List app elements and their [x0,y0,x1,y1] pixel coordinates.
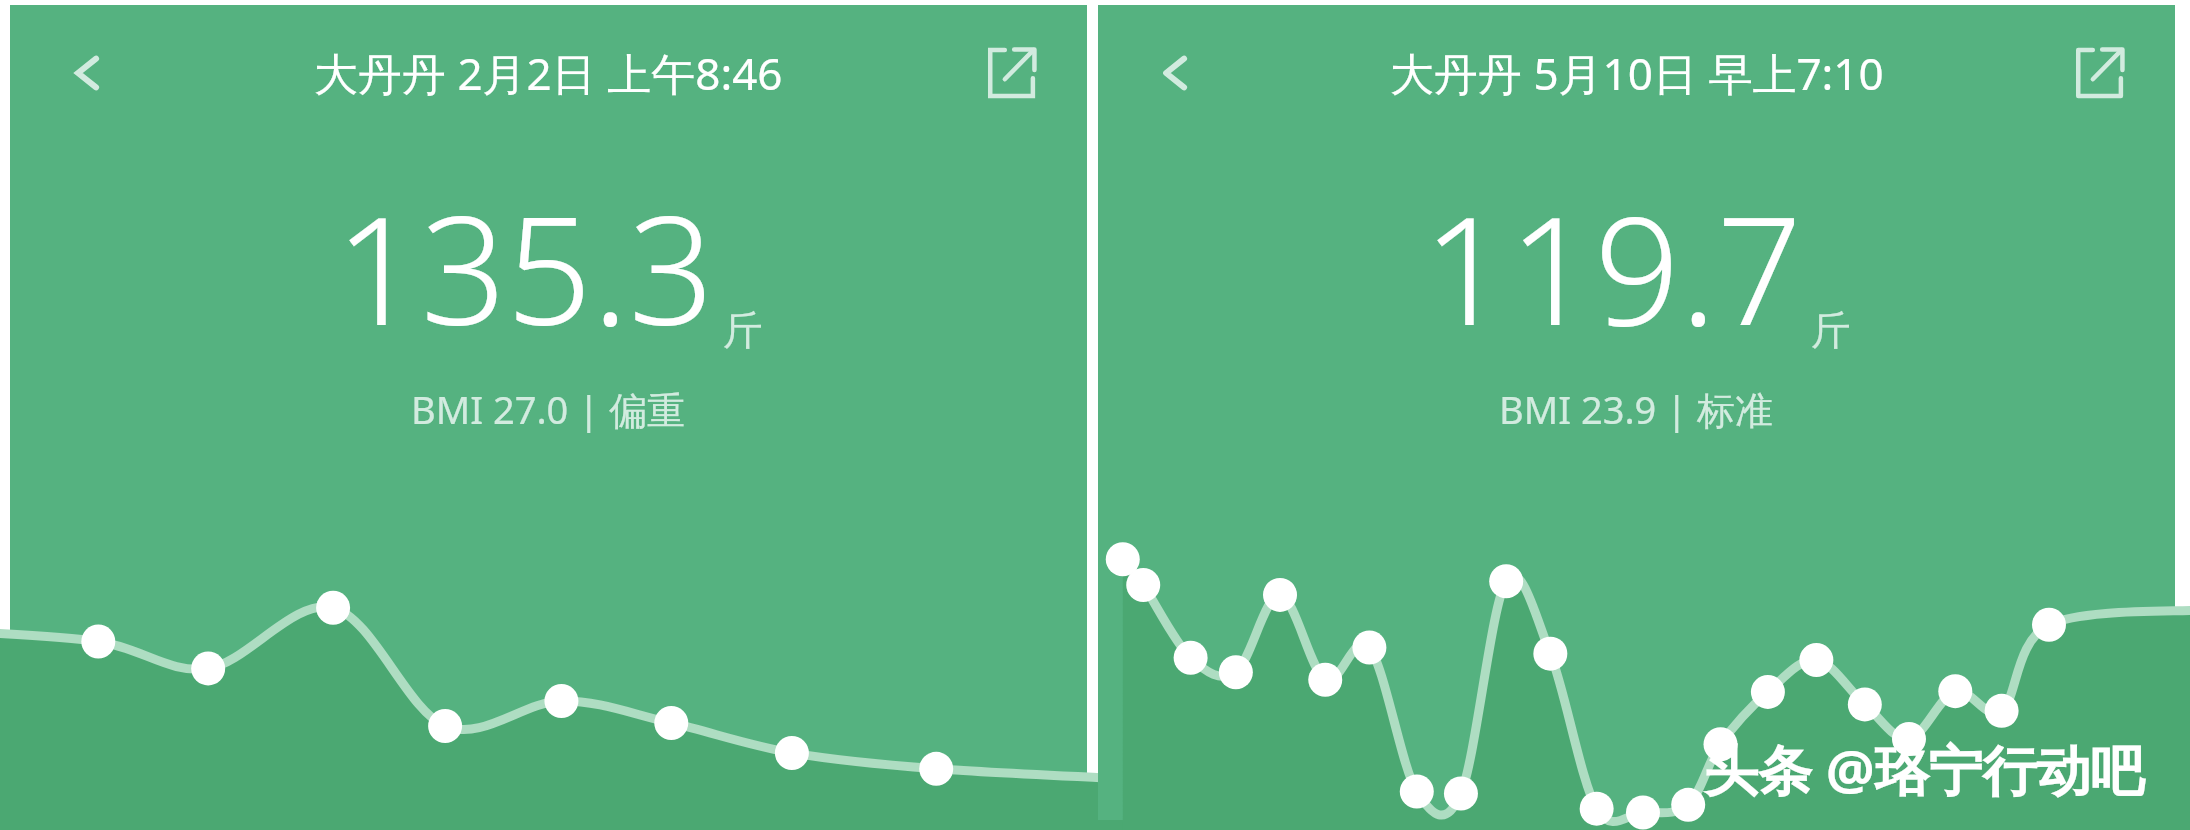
button[interactable]: Share [977,40,1043,106]
staticText: 斤 [723,305,763,355]
staticText: 大丹丹 5月10日 早上7:10 [1390,43,1884,103]
staticText: 头条 @珞宁行动吧 [1704,732,2145,806]
staticText: 119.7 [1423,165,1803,369]
button[interactable]: Share [2065,40,2131,106]
button[interactable]: Back [50,37,122,109]
staticText: BMI 23.9 | 标准 [1499,383,1774,435]
staticText: BMI 27.0 | 偏重 [411,383,686,435]
staticText: 斤 [1811,305,1851,355]
button[interactable]: Back [1138,37,1210,109]
staticText: 135.3 [335,165,715,369]
staticText: 大丹丹 2月2日 上午8:46 [314,43,783,103]
